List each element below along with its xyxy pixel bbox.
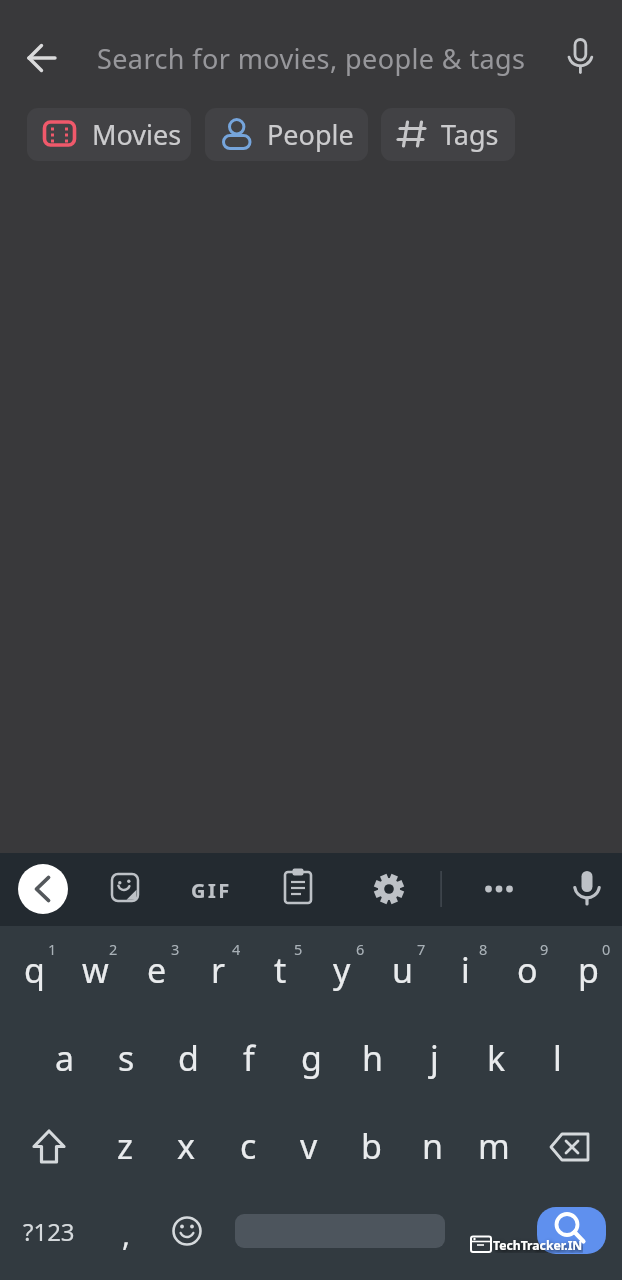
staticText: 3 [171, 939, 180, 959]
staticText: w [82, 947, 109, 993]
button[interactable] [540, 1102, 602, 1190]
button[interactable]: c [217, 1102, 279, 1190]
staticText: l [553, 1035, 562, 1081]
staticText: q [24, 947, 45, 993]
staticText: 2 [109, 939, 118, 959]
staticText: f [243, 1035, 255, 1081]
button[interactable] [99, 863, 151, 915]
button[interactable]: i [434, 926, 496, 1014]
button[interactable]: m [463, 1102, 525, 1190]
button[interactable]: a [34, 1014, 96, 1102]
staticText: k [487, 1035, 506, 1081]
staticText: Search for movies, people & tags [97, 40, 526, 77]
staticText: a [55, 1035, 75, 1081]
button[interactable] [363, 863, 415, 915]
staticText: e [147, 947, 167, 993]
staticText: c [240, 1123, 257, 1169]
button[interactable]: b [340, 1102, 402, 1190]
button[interactable]: t [249, 926, 311, 1014]
staticText: ?123 [23, 1215, 75, 1248]
staticText: 1 [48, 939, 57, 959]
staticText: m [478, 1123, 510, 1169]
staticText: i [461, 947, 470, 993]
staticText: d [178, 1035, 199, 1081]
button[interactable] [381, 108, 515, 161]
staticText: u [392, 947, 414, 993]
button[interactable] [18, 1102, 80, 1190]
button[interactable] [17, 34, 65, 82]
button[interactable] [561, 863, 613, 915]
button[interactable]: , [116, 1190, 136, 1278]
staticText: b [361, 1123, 382, 1169]
staticText: 8 [479, 939, 488, 959]
staticText: r [211, 947, 226, 993]
button[interactable]: w [64, 926, 126, 1014]
button[interactable]: g [280, 1014, 342, 1102]
button[interactable] [160, 1190, 214, 1274]
button[interactable]: o [496, 926, 558, 1014]
button[interactable]: v [278, 1102, 340, 1190]
button[interactable] [537, 1207, 606, 1254]
staticText: x [177, 1123, 195, 1169]
staticText: j [430, 1035, 439, 1081]
button[interactable]: x [155, 1102, 217, 1190]
button[interactable]: k [465, 1014, 527, 1102]
staticText: 4 [232, 939, 241, 959]
button[interactable] [556, 33, 604, 81]
staticText: , [122, 1214, 131, 1255]
button[interactable]: y [311, 926, 373, 1014]
button[interactable]: j [403, 1014, 465, 1102]
staticText: s [118, 1035, 135, 1081]
staticText: n [422, 1123, 444, 1169]
button[interactable]: z [94, 1102, 156, 1190]
button[interactable]: h [342, 1014, 404, 1102]
button[interactable] [18, 864, 68, 914]
button[interactable]: l [526, 1014, 588, 1102]
button[interactable]: e [126, 926, 188, 1014]
button[interactable] [80, 32, 546, 84]
staticText: t [274, 947, 287, 993]
staticText: TechTracker.IN [493, 1237, 583, 1253]
staticText: p [578, 947, 599, 993]
staticText: h [362, 1035, 384, 1081]
button[interactable]: u [372, 926, 434, 1014]
button[interactable]: r [187, 926, 249, 1014]
staticText: z [117, 1123, 133, 1169]
staticText: v [300, 1123, 318, 1169]
staticText: g [301, 1035, 322, 1081]
button[interactable]: s [95, 1014, 157, 1102]
staticText: 5 [294, 939, 303, 959]
button[interactable]: q [3, 926, 65, 1014]
staticText: Movies [92, 116, 182, 153]
button[interactable] [205, 108, 368, 161]
staticText: 0 [602, 939, 611, 959]
button[interactable]: ?123 [21, 1187, 77, 1275]
staticText: 6 [356, 939, 365, 959]
staticText: o [517, 947, 538, 993]
button[interactable] [185, 863, 237, 915]
staticText: 7 [417, 939, 426, 959]
staticText: Tags [441, 116, 499, 153]
button[interactable] [473, 863, 525, 915]
staticText: GIF [191, 877, 232, 901]
button[interactable] [27, 108, 191, 161]
button[interactable]: p [557, 926, 619, 1014]
staticText: 9 [540, 939, 549, 959]
button[interactable]: n [402, 1102, 464, 1190]
button[interactable]: f [218, 1014, 280, 1102]
staticText: People [267, 116, 354, 153]
staticText: y [333, 947, 351, 993]
button[interactable]: d [157, 1014, 219, 1102]
button[interactable] [272, 863, 324, 915]
